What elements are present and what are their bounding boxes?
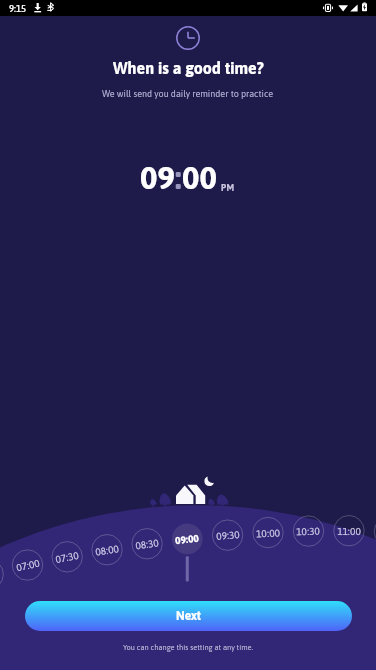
staticText: 09:00 — [174, 533, 199, 546]
staticText: 07:30 — [54, 550, 80, 565]
staticText: 09 — [140, 159, 175, 196]
button[interactable]: 09:30 — [212, 519, 244, 551]
staticText: 9:15 — [9, 3, 27, 14]
staticText: : — [175, 159, 182, 196]
staticText: 07:00 — [15, 557, 41, 573]
button[interactable]: 07:00 — [12, 549, 44, 581]
button[interactable]: 11:30 — [373, 516, 376, 548]
staticText: 11:00 — [337, 526, 361, 537]
button[interactable]: 09:00 — [171, 523, 203, 555]
staticText: 10:00 — [256, 527, 280, 540]
button[interactable]: 11:00 — [333, 515, 365, 547]
button[interactable]: 06:30 — [0, 558, 4, 590]
button[interactable]: 10:30 — [292, 515, 324, 547]
staticText: 10:30 — [296, 526, 320, 537]
other: Clock — [176, 26, 200, 50]
staticText: Next — [176, 609, 201, 623]
staticText: 08:30 — [134, 537, 160, 551]
staticText: PM — [221, 183, 235, 193]
staticText: When is a good time? — [113, 59, 264, 77]
button[interactable]: 08:30 — [131, 528, 163, 560]
staticText: We will send you daily reminder to pract… — [102, 89, 274, 99]
staticText: 09:30 — [216, 529, 240, 542]
staticText: 08:00 — [94, 543, 120, 558]
button[interactable]: 07:30 — [51, 541, 83, 573]
button[interactable]: 10:00 — [252, 517, 284, 549]
staticText: You can change this setting at any time. — [123, 643, 254, 652]
button[interactable]: Next — [25, 601, 352, 631]
button[interactable]: 08:00 — [91, 534, 123, 566]
staticText: 00 — [182, 159, 217, 196]
staticText: 06:30 — [0, 566, 1, 583]
